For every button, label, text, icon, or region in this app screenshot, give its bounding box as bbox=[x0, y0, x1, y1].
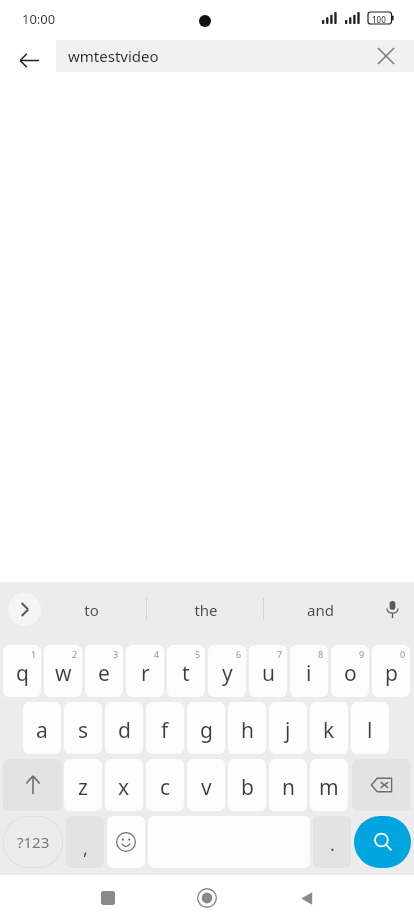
staticText: s bbox=[78, 716, 89, 745]
button[interactable]: More suggestions bbox=[8, 593, 41, 626]
staticText: , bbox=[83, 836, 88, 861]
button[interactable]: v bbox=[187, 759, 225, 811]
staticText: f bbox=[161, 716, 169, 745]
button[interactable]: p bbox=[372, 645, 410, 697]
staticText: 3 bbox=[113, 648, 119, 660]
staticText: u bbox=[262, 659, 275, 688]
staticText: 7 bbox=[277, 648, 283, 660]
staticText: v bbox=[201, 773, 212, 802]
staticText: y bbox=[222, 659, 233, 688]
button[interactable]: x bbox=[105, 759, 143, 811]
button[interactable]: the bbox=[158, 587, 254, 632]
button[interactable]: Back bbox=[288, 880, 324, 916]
button[interactable]: m bbox=[310, 759, 348, 811]
staticText: 9 bbox=[359, 648, 365, 660]
button[interactable]: h bbox=[228, 702, 266, 754]
button[interactable]: i bbox=[290, 645, 328, 697]
staticText: z bbox=[78, 773, 88, 802]
button[interactable]: Voice input bbox=[376, 593, 409, 626]
staticText: o bbox=[344, 659, 357, 688]
button[interactable]: Search bbox=[354, 816, 411, 868]
staticText: ?123 bbox=[17, 832, 50, 852]
staticText: and bbox=[307, 600, 334, 620]
staticText: x bbox=[118, 773, 130, 802]
button[interactable]: b bbox=[228, 759, 266, 811]
staticText: n bbox=[282, 773, 295, 802]
staticText: g bbox=[200, 716, 213, 745]
button[interactable]: c bbox=[146, 759, 184, 811]
staticText: 4 bbox=[154, 648, 160, 660]
staticText: d bbox=[118, 716, 131, 745]
staticText: m bbox=[319, 773, 339, 802]
button[interactable]: y bbox=[208, 645, 246, 697]
button[interactable]: k bbox=[310, 702, 348, 754]
button[interactable]: Back bbox=[8, 40, 48, 80]
staticText: 6 bbox=[236, 648, 242, 660]
button[interactable]: l bbox=[351, 702, 389, 754]
staticText: 100 bbox=[372, 14, 386, 25]
staticText: i bbox=[306, 659, 312, 688]
staticText: q bbox=[16, 659, 29, 688]
staticText: t bbox=[182, 659, 190, 688]
staticText: r bbox=[141, 659, 150, 688]
button[interactable]: , bbox=[66, 816, 104, 868]
button[interactable]: s bbox=[64, 702, 102, 754]
button[interactable]: r bbox=[126, 645, 164, 697]
staticText: k bbox=[323, 716, 335, 745]
button[interactable]: d bbox=[105, 702, 143, 754]
staticText: 1 bbox=[31, 648, 37, 660]
button[interactable]: Backspace bbox=[352, 759, 411, 811]
button[interactable]: j bbox=[269, 702, 307, 754]
staticText: l bbox=[367, 716, 373, 745]
button[interactable]: Home bbox=[189, 880, 225, 916]
staticText: the bbox=[194, 600, 218, 620]
button[interactable]: f bbox=[146, 702, 184, 754]
button[interactable]: t bbox=[167, 645, 205, 697]
button[interactable]: to bbox=[43, 587, 139, 632]
staticText: 2 bbox=[72, 648, 78, 660]
button[interactable]: ?123 bbox=[3, 816, 63, 868]
button[interactable]: o bbox=[331, 645, 369, 697]
button[interactable]: a bbox=[23, 702, 61, 754]
staticText: j bbox=[285, 716, 291, 745]
button[interactable]: Clear bbox=[370, 40, 402, 72]
button[interactable]: w bbox=[44, 645, 82, 697]
button[interactable]: . bbox=[313, 816, 351, 868]
button[interactable]: wmtestvideo bbox=[56, 40, 414, 72]
staticText: 0 bbox=[400, 648, 406, 660]
staticText: to bbox=[84, 600, 99, 620]
button[interactable]: u bbox=[249, 645, 287, 697]
button[interactable]: g bbox=[187, 702, 225, 754]
button[interactable]: Emoji bbox=[107, 816, 145, 868]
staticText: w bbox=[55, 659, 72, 688]
staticText: a bbox=[36, 716, 48, 745]
staticText: . bbox=[330, 832, 335, 857]
button[interactable]: Recents bbox=[90, 880, 126, 916]
button[interactable]: z bbox=[64, 759, 102, 811]
staticText: p bbox=[385, 659, 398, 688]
button[interactable]: n bbox=[269, 759, 307, 811]
button[interactable]: e bbox=[85, 645, 123, 697]
staticText: 8 bbox=[318, 648, 324, 660]
staticText: 5 bbox=[195, 648, 201, 660]
staticText: h bbox=[241, 716, 254, 745]
staticText: e bbox=[98, 659, 110, 688]
staticText: c bbox=[160, 773, 171, 802]
staticText: 10:00 bbox=[22, 10, 56, 28]
button[interactable]: q bbox=[3, 645, 41, 697]
button[interactable]: Shift bbox=[3, 759, 62, 811]
button[interactable]: and bbox=[272, 587, 368, 632]
staticText: wmtestvideo bbox=[68, 46, 159, 66]
staticText: b bbox=[241, 773, 254, 802]
